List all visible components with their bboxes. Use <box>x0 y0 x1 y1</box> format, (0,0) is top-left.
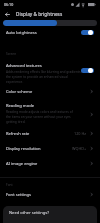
button[interactable]: Auto brightness <box>0 26 100 52</box>
staticText: Screen <box>6 52 17 56</box>
staticText: 120 Hz <box>74 131 87 136</box>
button[interactable]: Advanced textures <box>0 56 100 89</box>
staticText: Display resolution <box>6 146 41 152</box>
button[interactable]: Brightness <box>3 20 97 26</box>
button[interactable]: Display resolution <box>0 146 100 161</box>
staticText: 06:10 <box>4 2 14 7</box>
staticText: AI image engine <box>6 161 38 167</box>
button[interactable]: Color scheme <box>0 89 100 103</box>
button[interactable]: AI image engine <box>0 161 100 176</box>
button[interactable]: Font settings <box>0 187 100 202</box>
button[interactable]: Reading mode <box>0 103 100 130</box>
button[interactable]: Back <box>2 9 12 19</box>
staticText: Refresh rate <box>6 131 30 137</box>
staticText: WQHD+ <box>72 146 87 151</box>
staticText: Display & brightness <box>16 11 63 17</box>
staticText: Adds rendering effects like blurring and… <box>6 70 85 84</box>
staticText: Font <box>6 183 13 187</box>
button[interactable]: Toggle <box>81 30 94 35</box>
button[interactable]: Refresh rate <box>0 130 100 146</box>
staticText: Need other settings? <box>9 210 49 216</box>
staticText: Auto brightness <box>6 30 37 36</box>
button[interactable]: Toggle <box>81 68 94 73</box>
staticText: Reading mode <box>6 103 34 109</box>
staticText: Color scheme <box>6 89 33 95</box>
staticText: Advanced textures <box>6 63 42 69</box>
button[interactable]: Need other settings? <box>3 206 97 223</box>
staticText: Font settings <box>6 192 31 198</box>
staticText: Reading mode adjusts colors and textures… <box>6 110 73 124</box>
